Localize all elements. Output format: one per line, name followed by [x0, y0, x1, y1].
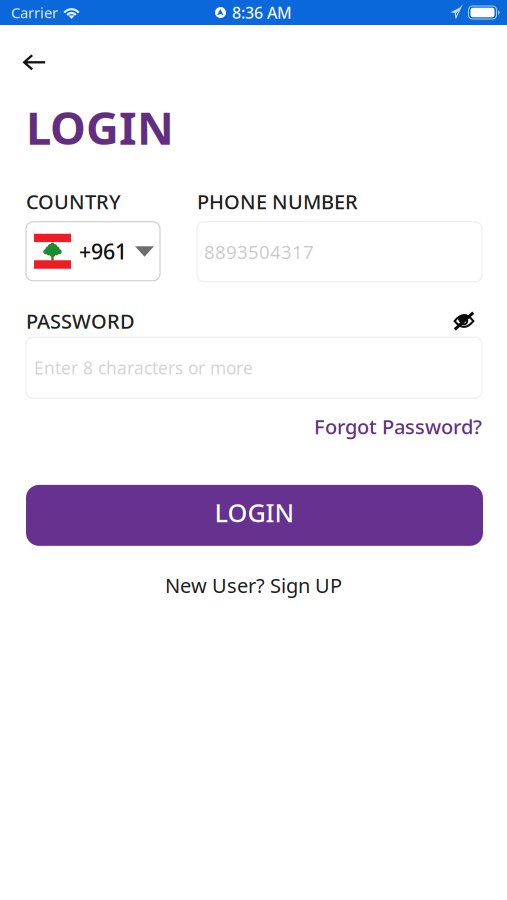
staticText: 8893504317	[204, 239, 314, 264]
button[interactable]: Phone number	[197, 222, 482, 282]
staticText: New User? Sign UP	[165, 572, 342, 598]
button[interactable]: New User? Sign UP	[165, 572, 342, 598]
staticText: COUNTRY	[26, 188, 121, 215]
button[interactable]: Password	[26, 337, 482, 398]
staticText: Enter 8 characters or more	[34, 356, 253, 379]
button[interactable]: Back	[0, 48, 60, 77]
button[interactable]: Forgot Password?	[314, 413, 482, 440]
staticText: Carrier	[11, 3, 58, 22]
staticText: LOGIN	[26, 97, 174, 157]
button[interactable]: Show password	[454, 310, 474, 332]
button[interactable]: Country code, Lebanon +961	[26, 222, 160, 281]
button[interactable]: LOGIN	[26, 485, 483, 546]
staticText: Forgot Password?	[314, 413, 482, 440]
staticText: 8:36 AM	[232, 2, 292, 23]
staticText: +961	[79, 237, 127, 265]
staticText: LOGIN	[214, 496, 294, 529]
staticText: PASSWORD	[26, 308, 135, 334]
staticText: PHONE NUMBER	[197, 188, 358, 215]
